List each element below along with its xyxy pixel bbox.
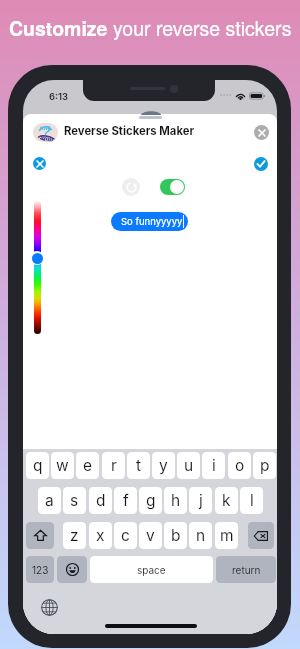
button[interactable]: Backspace bbox=[248, 522, 274, 549]
button[interactable]: b bbox=[164, 522, 187, 549]
button[interactable]: k bbox=[215, 487, 238, 514]
staticText: q bbox=[33, 456, 43, 475]
button[interactable]: i bbox=[202, 452, 225, 479]
staticText: 123 bbox=[32, 564, 49, 576]
staticText: k bbox=[222, 491, 231, 510]
staticText: o bbox=[235, 456, 245, 475]
button[interactable]: v bbox=[139, 522, 162, 549]
staticText: a bbox=[45, 491, 54, 510]
button[interactable]: e bbox=[76, 452, 99, 479]
staticText: Customize bbox=[9, 14, 113, 42]
staticText: j bbox=[199, 491, 203, 510]
button[interactable]: Colour bbox=[34, 201, 41, 334]
button[interactable]: Close bbox=[254, 125, 269, 140]
staticText: p bbox=[260, 456, 270, 475]
button[interactable]: t bbox=[127, 452, 150, 479]
button[interactable]: m bbox=[215, 522, 238, 549]
staticText: h bbox=[171, 491, 181, 510]
button[interactable]: Toggle reverse bbox=[160, 179, 185, 195]
button[interactable]: return bbox=[216, 556, 276, 583]
staticText: your reverse stickers bbox=[113, 14, 292, 42]
staticText: z bbox=[70, 526, 79, 545]
staticText: g bbox=[146, 491, 156, 510]
button[interactable]: d bbox=[89, 487, 112, 514]
button[interactable]: a bbox=[38, 487, 61, 514]
button[interactable]: space bbox=[90, 556, 213, 583]
button[interactable]: q bbox=[26, 452, 49, 479]
button[interactable]: So funnyyyyy bbox=[111, 212, 188, 231]
button[interactable]: c bbox=[114, 522, 137, 549]
staticText: s bbox=[70, 491, 79, 510]
staticText: t bbox=[136, 456, 142, 475]
staticText: u bbox=[184, 456, 194, 475]
staticText: So funnyyyyy bbox=[121, 216, 183, 227]
staticText: x bbox=[96, 526, 105, 545]
staticText: d bbox=[96, 491, 106, 510]
button[interactable]: Cancel bbox=[33, 157, 46, 170]
button[interactable]: z bbox=[63, 522, 86, 549]
button[interactable]: x bbox=[89, 522, 112, 549]
button[interactable]: l bbox=[240, 487, 263, 514]
button[interactable]: u bbox=[177, 452, 200, 479]
staticText: f bbox=[123, 491, 129, 510]
button[interactable]: s bbox=[63, 487, 86, 514]
staticText: v bbox=[146, 526, 155, 545]
button[interactable]: 123 bbox=[26, 556, 54, 583]
button[interactable]: f bbox=[114, 487, 137, 514]
staticText: b bbox=[171, 526, 181, 545]
button[interactable]: o bbox=[228, 452, 251, 479]
staticText: m bbox=[220, 526, 234, 545]
staticText: return bbox=[232, 564, 261, 576]
button[interactable]: Shift bbox=[26, 522, 54, 549]
button[interactable]: y bbox=[152, 452, 175, 479]
staticText: 6:13 bbox=[49, 91, 69, 102]
staticText: r bbox=[111, 456, 117, 475]
staticText: c bbox=[121, 526, 130, 545]
staticText: n bbox=[196, 526, 206, 545]
staticText: e bbox=[83, 456, 93, 475]
button[interactable]: Emoji bbox=[57, 556, 87, 583]
staticText: l bbox=[250, 491, 254, 510]
button[interactable]: Reset bbox=[122, 178, 140, 196]
button[interactable]: Change keyboard bbox=[41, 599, 58, 616]
button[interactable]: r bbox=[102, 452, 125, 479]
staticText: i bbox=[212, 456, 216, 475]
button[interactable]: Confirm bbox=[254, 157, 268, 171]
staticText: space bbox=[137, 564, 166, 576]
button[interactable]: w bbox=[51, 452, 74, 479]
staticText: y bbox=[159, 456, 168, 475]
button[interactable]: h bbox=[164, 487, 187, 514]
button[interactable]: p bbox=[253, 452, 276, 479]
button[interactable]: g bbox=[139, 487, 162, 514]
staticText: Reverse Stickers Maker bbox=[64, 124, 195, 138]
button[interactable]: n bbox=[189, 522, 212, 549]
button[interactable]: j bbox=[189, 487, 212, 514]
staticText: w bbox=[56, 456, 69, 475]
